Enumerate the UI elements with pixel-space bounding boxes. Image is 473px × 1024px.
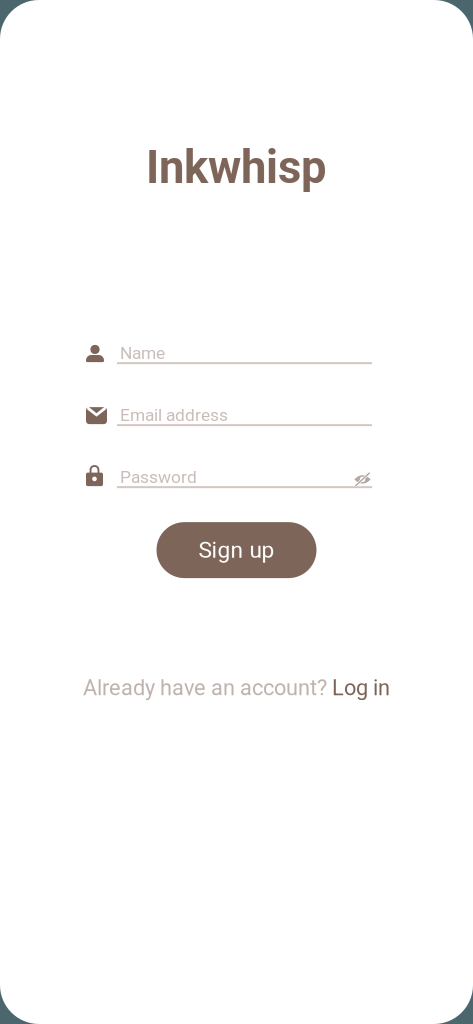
button[interactable]: Already have an account? <box>83 675 390 701</box>
staticText: Log in <box>332 675 390 701</box>
staticText: Inkwhisp <box>146 141 327 194</box>
staticText: Password <box>120 467 197 487</box>
button[interactable]: Show password <box>354 472 371 486</box>
staticText: Name <box>120 343 165 363</box>
staticText: Email address <box>120 405 228 425</box>
button[interactable]: Sign up <box>156 522 316 578</box>
staticText: Sign up <box>198 537 274 563</box>
staticText: Already have an account? <box>83 675 332 701</box>
